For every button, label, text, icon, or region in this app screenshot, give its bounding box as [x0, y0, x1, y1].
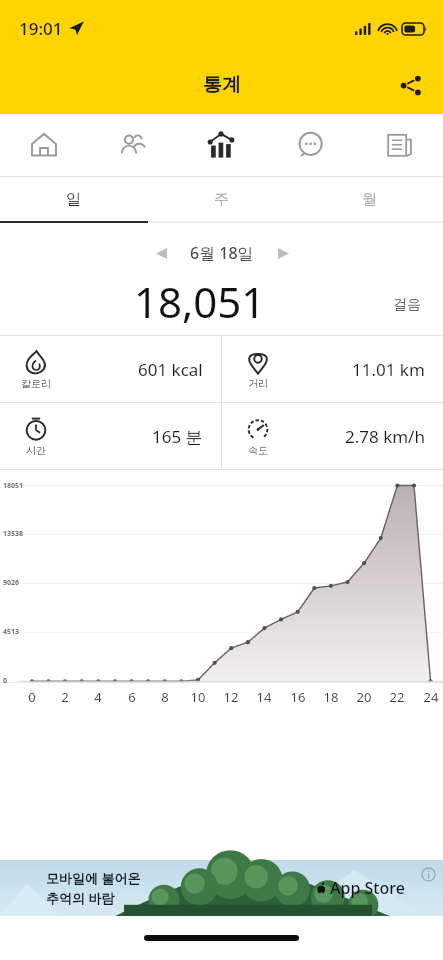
- staticText: App Store: [330, 877, 405, 899]
- staticText: 20: [355, 688, 373, 706]
- staticText: 2: [56, 688, 74, 706]
- button[interactable]: Chat: [265, 114, 354, 176]
- staticText: 일: [66, 190, 81, 209]
- staticText: 시간: [26, 444, 46, 457]
- staticText: 2.78 km/h: [345, 425, 425, 448]
- staticText: 18: [322, 688, 340, 706]
- button[interactable]: 모바일에 불어온: [0, 860, 443, 916]
- button[interactable]: Ad info: [418, 864, 438, 884]
- button[interactable]: Home: [0, 114, 88, 176]
- staticText: 4513: [3, 627, 20, 637]
- button[interactable]: Statistics: [176, 114, 265, 176]
- button[interactable]: 속도: [222, 403, 443, 469]
- staticText: 11.01 km: [352, 358, 425, 381]
- staticText: 165 분: [152, 425, 203, 448]
- staticText: 10: [189, 688, 207, 706]
- staticText: 24: [422, 688, 440, 706]
- button[interactable]: 일: [0, 177, 147, 221]
- staticText: 거리: [248, 377, 268, 390]
- staticText: 6월 18일: [190, 242, 254, 264]
- button[interactable]: 월: [295, 177, 443, 221]
- staticText: 0: [23, 688, 41, 706]
- staticText: 칼로리: [21, 377, 51, 390]
- staticText: 모바일에 불어온: [46, 869, 141, 887]
- staticText: 18,051: [134, 273, 266, 325]
- staticText: 14: [255, 688, 273, 706]
- staticText: 통계: [203, 73, 241, 97]
- staticText: 월: [362, 190, 377, 209]
- button[interactable]: News: [354, 114, 443, 176]
- button[interactable]: 칼로리: [0, 336, 221, 402]
- staticText: 4: [89, 688, 107, 706]
- staticText: 601 kcal: [138, 358, 203, 381]
- staticText: 주: [214, 190, 229, 209]
- button[interactable]: Next day: [266, 237, 300, 269]
- staticText: 속도: [248, 444, 268, 457]
- staticText: 22: [388, 688, 406, 706]
- button[interactable]: 거리: [222, 336, 443, 402]
- staticText: 9026: [3, 578, 20, 588]
- staticText: 8: [156, 688, 174, 706]
- staticText: 18051: [3, 481, 24, 491]
- button[interactable]: 시간: [0, 403, 221, 469]
- staticText: 19:01: [19, 17, 63, 40]
- staticText: 6: [123, 688, 141, 706]
- staticText: 13538: [3, 529, 24, 539]
- staticText: 0: [3, 676, 8, 686]
- staticText: 추억의 바람: [46, 889, 115, 907]
- button[interactable]: 주: [147, 177, 295, 221]
- button[interactable]: Share: [387, 62, 433, 108]
- button[interactable]: Friends: [88, 114, 176, 176]
- button[interactable]: Previous day: [144, 237, 178, 269]
- staticText: 걸음: [393, 296, 421, 314]
- staticText: 12: [222, 688, 240, 706]
- staticText: 16: [289, 688, 307, 706]
